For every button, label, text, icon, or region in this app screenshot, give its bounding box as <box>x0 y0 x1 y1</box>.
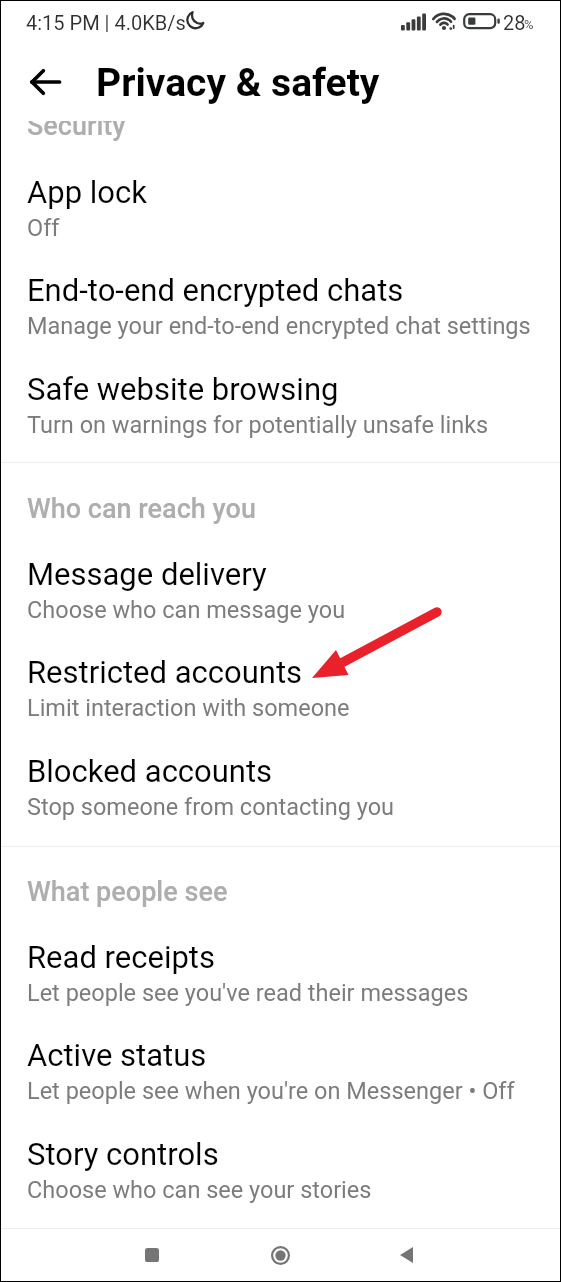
staticText: What people see <box>27 876 228 908</box>
staticText: Privacy & safety <box>96 60 380 106</box>
staticText: Blocked accounts <box>27 753 273 789</box>
staticText: 28 <box>503 11 526 34</box>
staticText: % <box>524 17 534 32</box>
staticText: Turn on warnings for potentially unsafe … <box>27 411 489 439</box>
staticText: Restricted accounts <box>27 654 303 690</box>
staticText: Stop someone from contacting you <box>27 793 395 821</box>
staticText: Manage your end-to-end encrypted chat se… <box>27 312 531 340</box>
staticText: Let people see you've read their message… <box>27 979 469 1007</box>
staticText: Safe website browsing <box>27 371 339 407</box>
button[interactable]: Back <box>19 58 71 106</box>
staticText: 4:15 PM | 4.0KB/s <box>26 11 186 34</box>
button[interactable]: Safe website browsing <box>0 371 561 435</box>
staticText: Read receipts <box>27 939 215 975</box>
button[interactable]: Home <box>238 1229 322 1281</box>
staticText: Message delivery <box>27 556 267 592</box>
button[interactable]: Recent apps <box>110 1229 194 1281</box>
staticText: Story controls <box>27 1136 219 1172</box>
staticText: Active status <box>27 1037 207 1073</box>
staticText: Let people see when you're on Messenger … <box>27 1077 515 1105</box>
button[interactable]: End-to-end encrypted chats <box>0 272 561 336</box>
button[interactable]: Blocked accounts <box>0 753 561 817</box>
staticText: Choose who can see your stories <box>27 1176 372 1204</box>
button[interactable]: Active status <box>0 1037 561 1101</box>
button[interactable]: Read receipts <box>0 939 561 1003</box>
staticText: Limit interaction with someone <box>27 694 350 722</box>
staticText: Off <box>27 214 60 242</box>
button[interactable]: App lock <box>0 174 561 238</box>
button[interactable]: Restricted accounts <box>0 654 561 718</box>
staticText: App lock <box>27 174 147 210</box>
staticText: Choose who can message you <box>27 596 346 624</box>
staticText: Security <box>27 110 126 142</box>
button[interactable]: Message delivery <box>0 556 561 620</box>
staticText: End-to-end encrypted chats <box>27 272 404 308</box>
staticText: Who can reach you <box>27 493 256 525</box>
button[interactable]: Back <box>364 1229 448 1281</box>
button[interactable]: Story controls <box>0 1136 561 1200</box>
